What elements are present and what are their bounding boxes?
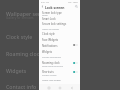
button[interactable]: Shortcuts [39, 70, 80, 76]
staticText: LTE 100% [68, 1, 78, 4]
button[interactable]: Roaming clock [39, 61, 80, 67]
staticText: Face Widgets [42, 38, 59, 42]
staticText: Wallpaper services [6, 10, 39, 17]
button[interactable]: Face Widgets [39, 38, 80, 43]
staticText: 9:41 AM [41, 1, 49, 4]
staticText: Contact information [42, 56, 61, 59]
button[interactable]: Notifications [39, 44, 80, 49]
button[interactable]: Home [57, 85, 62, 90]
button[interactable]: Smart Lock [39, 17, 80, 22]
staticText: Clock style [42, 32, 55, 36]
staticText: Screen lock type [42, 11, 62, 15]
button[interactable]: Back [40, 4, 45, 9]
staticText: Shortcuts [42, 70, 54, 74]
staticText: About Lock screen [42, 79, 61, 82]
button[interactable]: Clock style [39, 32, 80, 37]
button[interactable]: Back [69, 85, 74, 90]
staticText: Smart Lock [42, 17, 56, 21]
staticText: Lock screen [45, 5, 65, 9]
staticText: Notifications [42, 44, 58, 48]
button[interactable]: Contact info [0, 83, 39, 90]
staticText: Widgets [6, 67, 27, 74]
staticText: Gallery or Services [6, 16, 34, 20]
staticText: Show home time zone [42, 65, 63, 67]
staticText: Contact info [6, 83, 37, 90]
staticText: Clock style [6, 33, 33, 40]
staticText: Camera, Phone [42, 74, 57, 76]
button[interactable]: About Lock screen [39, 79, 80, 82]
button[interactable]: Wallpaper services [0, 10, 39, 21]
button[interactable]: Screen lock type [39, 11, 80, 16]
staticText: Always On Display [42, 28, 60, 31]
staticText: Roaming clock [42, 61, 60, 65]
button[interactable]: Widgets [39, 50, 80, 55]
staticText: Swipe [42, 14, 48, 17]
staticText: Widgets [42, 50, 52, 54]
button[interactable]: Widgets [0, 67, 39, 74]
button[interactable]: Clock style [0, 33, 39, 40]
staticText: Roaming clock [6, 50, 39, 57]
button[interactable]: Secure lock settings [39, 22, 80, 27]
button[interactable]: Roaming clock [0, 50, 39, 57]
button[interactable]: Search [74, 4, 79, 9]
staticText: Secure lock settings [42, 22, 67, 26]
button[interactable]: Recent apps [46, 85, 51, 90]
